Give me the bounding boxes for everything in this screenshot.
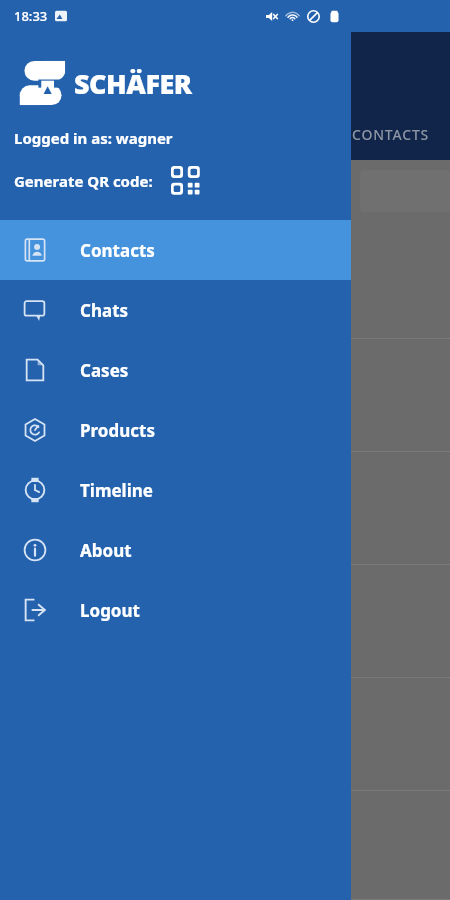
staticText: Logout: [80, 599, 140, 622]
staticText: Products: [80, 419, 155, 442]
staticText: About: [80, 539, 132, 562]
button[interactable]: Products: [0, 400, 351, 460]
staticText: 18:33: [14, 7, 48, 25]
button[interactable]: Logout: [0, 580, 351, 640]
staticText: Timeline: [80, 479, 153, 502]
staticText: Logged in as: wagner: [14, 128, 173, 148]
button[interactable]: About: [0, 520, 351, 580]
staticText: Contacts: [80, 239, 155, 262]
button[interactable]: Cases: [0, 340, 351, 400]
button[interactable]: Chats: [0, 280, 351, 340]
button[interactable]: Contacts: [0, 220, 351, 280]
staticText: Chats: [80, 299, 129, 322]
staticText: SCHÄFER: [74, 65, 192, 102]
staticText: Cases: [80, 359, 129, 382]
staticText: Generate QR code:: [14, 171, 153, 191]
staticText: CONTACTS: [352, 125, 430, 144]
button[interactable]: Timeline: [0, 460, 351, 520]
button[interactable]: Generate QR code: [167, 162, 205, 200]
